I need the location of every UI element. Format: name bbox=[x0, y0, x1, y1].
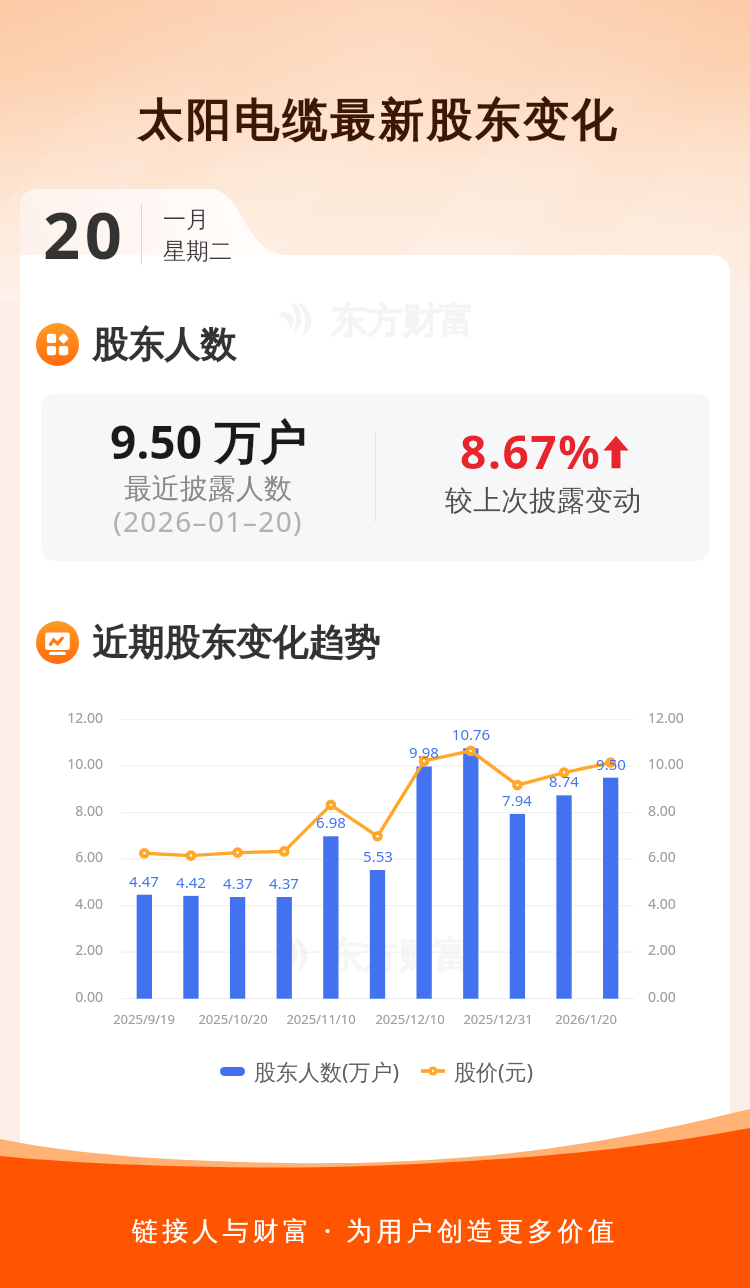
staticText: 2025/12/10 bbox=[360, 1010, 460, 1028]
staticText: 4.37 bbox=[208, 873, 268, 893]
staticText: 20 bbox=[43, 190, 127, 279]
staticText: 10.76 bbox=[441, 724, 501, 744]
staticText: 4.42 bbox=[161, 872, 221, 892]
staticText: 2.00 bbox=[648, 940, 696, 959]
staticText: 10.00 bbox=[55, 754, 103, 773]
staticText: 12.00 bbox=[55, 708, 103, 727]
button[interactable]: 近期股东变化趋势 bbox=[36, 620, 380, 665]
staticText: 10.00 bbox=[648, 754, 696, 773]
other: 股东人数 bbox=[36, 323, 79, 366]
staticText: 2.00 bbox=[55, 940, 103, 959]
staticText: 较上次披露变动 bbox=[376, 483, 710, 518]
staticText: 9.50 万户 bbox=[41, 410, 375, 473]
staticText: 8.74 bbox=[534, 771, 594, 791]
staticText: 东方财富 bbox=[330, 298, 474, 343]
staticText: 股东人数 bbox=[92, 322, 236, 367]
staticText: 股价(元) bbox=[454, 1056, 534, 1086]
staticText: 2025/12/31 bbox=[448, 1010, 548, 1028]
staticText: 6.00 bbox=[648, 847, 696, 866]
staticText: (2026–01–20) bbox=[41, 502, 375, 540]
staticText: 4.37 bbox=[254, 873, 314, 893]
staticText: 4.00 bbox=[648, 894, 696, 913]
staticText: 12.00 bbox=[648, 708, 696, 727]
staticText: 2025/10/20 bbox=[183, 1010, 283, 1028]
staticText: 9.98 bbox=[394, 742, 454, 762]
staticText: 4.00 bbox=[55, 894, 103, 913]
staticText: 8.00 bbox=[55, 801, 103, 820]
staticText: 4.47 bbox=[114, 871, 174, 891]
staticText: 星期二 bbox=[163, 237, 232, 266]
staticText: 9.50 bbox=[581, 754, 641, 774]
staticText: 东方财富 bbox=[326, 933, 470, 978]
staticText: 2026/1/20 bbox=[536, 1010, 636, 1028]
button[interactable] bbox=[41, 394, 710, 561]
staticText: 一月 bbox=[163, 205, 209, 234]
staticText: 近期股东变化趋势 bbox=[92, 620, 380, 665]
staticText: 太阳电缆最新股东变化 bbox=[3, 93, 750, 150]
staticText: 8.67% bbox=[460, 420, 602, 483]
staticText: 5.53 bbox=[348, 846, 408, 866]
staticText: 6.00 bbox=[55, 847, 103, 866]
staticText: 0.00 bbox=[55, 987, 103, 1006]
other: 近期股东变化趋势 bbox=[36, 621, 79, 664]
button[interactable]: 股东人数 bbox=[36, 322, 236, 367]
staticText: 股东人数(万户) bbox=[254, 1056, 400, 1086]
staticText: 最近披露人数 bbox=[41, 471, 375, 506]
staticText: 7.94 bbox=[487, 790, 547, 810]
staticText: 8.00 bbox=[648, 801, 696, 820]
staticText: 2025/11/10 bbox=[271, 1010, 371, 1028]
staticText: 0.00 bbox=[648, 987, 696, 1006]
staticText: 6.98 bbox=[301, 812, 361, 832]
staticText: 链接人与财富 · 为用户创造更多价值 bbox=[0, 1212, 750, 1248]
staticText: 2025/9/19 bbox=[94, 1010, 194, 1028]
button[interactable]: 股东人数(万户) bbox=[220, 1056, 534, 1086]
